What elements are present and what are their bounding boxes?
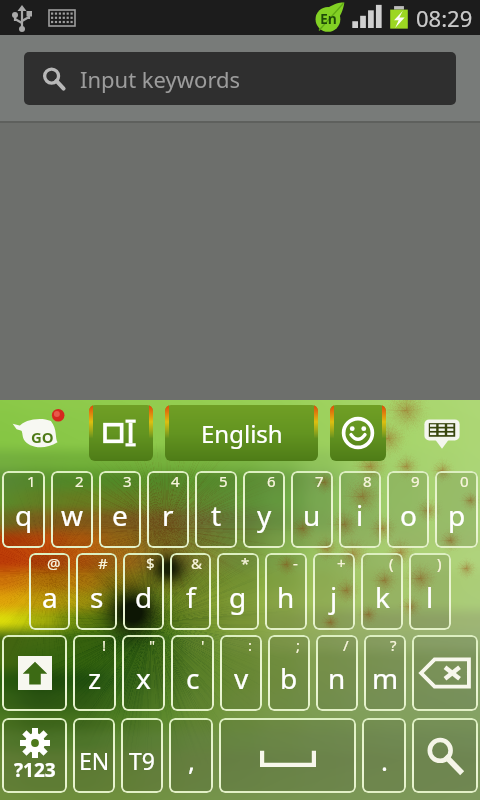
staticText: 8 [363,471,372,491]
staticText: ) [437,553,442,573]
staticText: h [277,578,295,616]
staticText: e [112,496,128,534]
button[interactable]: . [362,718,406,793]
staticText: z [88,659,102,697]
staticText: v [234,659,249,697]
button[interactable]: o [387,471,429,548]
staticText: & [191,553,202,573]
staticText: u [303,496,321,534]
button[interactable]: c [171,635,214,711]
staticText: @ [47,553,61,573]
button[interactable]: d [123,553,164,630]
button[interactable]: n [316,635,358,711]
staticText: 2 [75,471,84,491]
staticText: EN [79,745,110,776]
staticText: $ [146,553,155,573]
button[interactable]: English [165,405,318,461]
button[interactable]: a [29,553,70,630]
staticText: 08:29 [416,3,473,33]
button[interactable]: i [339,471,381,548]
staticText: i [356,496,364,534]
button[interactable]: GO Keyboard menu [10,410,76,456]
staticText: En [320,9,337,28]
staticText: x [136,659,151,697]
staticText: ( [389,553,394,573]
button[interactable]: y [243,471,285,548]
staticText: 9 [411,471,420,491]
button[interactable]: x [122,635,165,711]
button[interactable]: b [268,635,310,711]
button[interactable]: j [313,553,355,630]
staticText: # [98,553,108,573]
button[interactable]: , [169,718,213,793]
button[interactable]: T9 [121,718,163,793]
staticText: 7 [315,471,324,491]
staticText: 4 [171,471,180,491]
staticText: - [293,553,298,573]
staticText: g [229,578,247,616]
button[interactable]: u [291,471,333,548]
staticText: o [400,496,417,534]
staticText: 6 [267,471,276,491]
staticText: c [186,659,200,697]
staticText: f [186,578,196,616]
staticText: q [15,496,33,534]
staticText: j [330,578,338,616]
button[interactable]: p [435,471,478,548]
button[interactable]: Shift [2,635,67,711]
staticText: ?123 [14,757,56,783]
staticText: y [257,496,272,534]
button[interactable]: Hide keyboard [422,416,462,450]
staticText: 3 [123,471,132,491]
staticText: ! [102,635,107,655]
staticText: 1 [27,471,36,491]
staticText: ' [201,635,205,655]
staticText: English [201,417,283,450]
staticText: Input keywords [80,64,241,94]
button[interactable]: w [51,471,93,548]
button[interactable]: f [170,553,211,630]
button[interactable]: Change layout [89,405,153,461]
button[interactable]: Input keywords [24,52,456,105]
staticText: " [149,635,156,655]
button[interactable]: l [409,553,451,630]
button[interactable]: Search [412,718,478,793]
button[interactable]: h [265,553,307,630]
staticText: + [337,553,346,573]
staticText: s [90,578,104,616]
button[interactable]: Backspace [412,635,478,711]
staticText: r [162,496,174,534]
button[interactable]: k [361,553,403,630]
staticText: l [426,578,434,616]
staticText: p [448,496,466,534]
button[interactable]: q [2,471,45,548]
staticText: GO [31,427,54,447]
button[interactable]: t [195,471,237,548]
button[interactable]: v [220,635,262,711]
staticText: * [241,553,250,573]
staticText: n [328,659,346,697]
staticText: m [372,659,399,697]
button[interactable]: g [217,553,259,630]
button[interactable]: r [147,471,189,548]
staticText: d [135,578,153,616]
button[interactable]: EN [73,718,115,793]
staticText: t [211,496,222,534]
staticText: 0 [460,471,469,491]
staticText: k [375,578,390,616]
staticText: ? [390,635,397,655]
staticText: T9 [129,745,155,776]
staticText: 5 [219,471,228,491]
button[interactable]: Symbols and settings [2,718,67,793]
button[interactable]: s [76,553,117,630]
button[interactable]: z [73,635,116,711]
button[interactable]: Emoji [330,405,386,461]
staticText: w [61,496,84,534]
button[interactable]: e [99,471,141,548]
staticText: : [248,635,253,655]
button[interactable]: Space [219,718,356,793]
button[interactable]: m [364,635,406,711]
staticText: / [343,635,349,655]
staticText: ; [296,635,301,655]
staticText: . [381,743,388,778]
